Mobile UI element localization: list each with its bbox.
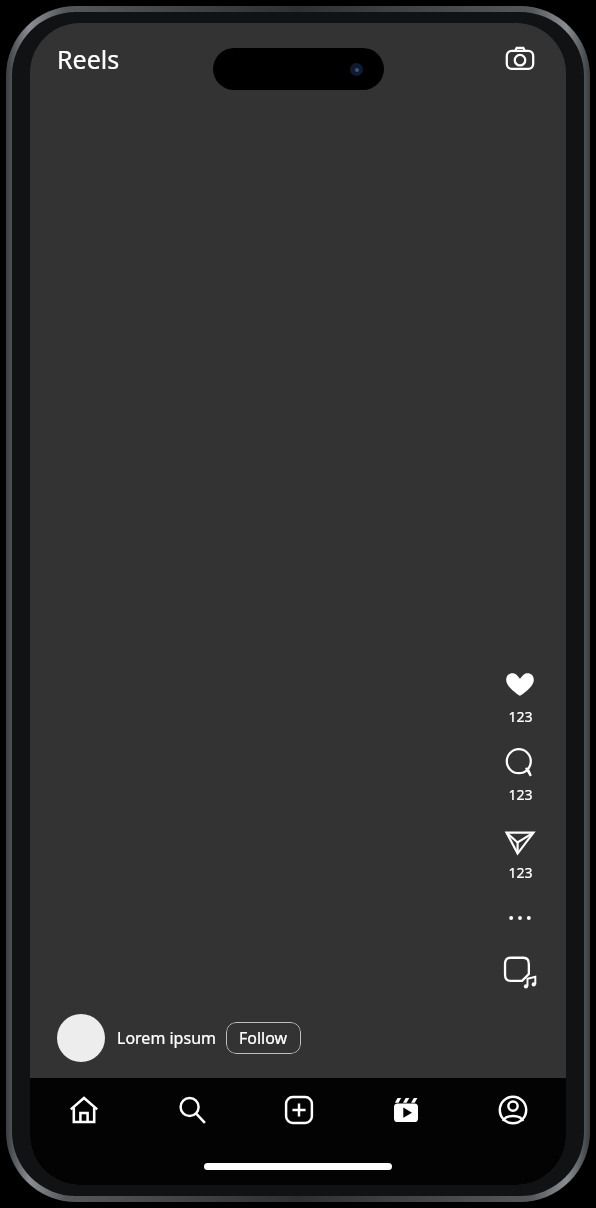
button[interactable]: Camera: [498, 37, 542, 81]
button[interactable]: Reels: [57, 42, 120, 76]
staticText: 123: [508, 785, 533, 804]
button[interactable]: Like: [492, 666, 548, 730]
button[interactable]: Create: [245, 1078, 352, 1142]
button[interactable]: Reels: [352, 1078, 459, 1142]
staticText: 123: [508, 707, 533, 726]
button[interactable]: Lorem ipsum: [57, 1014, 301, 1062]
button[interactable]: Home: [30, 1078, 138, 1142]
button[interactable]: Audio: [498, 950, 542, 994]
button[interactable]: More options: [498, 896, 542, 940]
button[interactable]: Share: [492, 822, 548, 886]
button[interactable]: Follow: [226, 1022, 301, 1054]
button[interactable]: Search: [138, 1078, 245, 1142]
staticText: 123: [508, 863, 533, 882]
button[interactable]: Comment: [492, 744, 548, 808]
button[interactable]: Profile: [459, 1078, 566, 1142]
staticText: Lorem ipsum: [117, 1027, 216, 1049]
staticText: Follow: [239, 1027, 288, 1049]
button[interactable]: Lorem ipsum dolor sit amet: [57, 1076, 278, 1099]
